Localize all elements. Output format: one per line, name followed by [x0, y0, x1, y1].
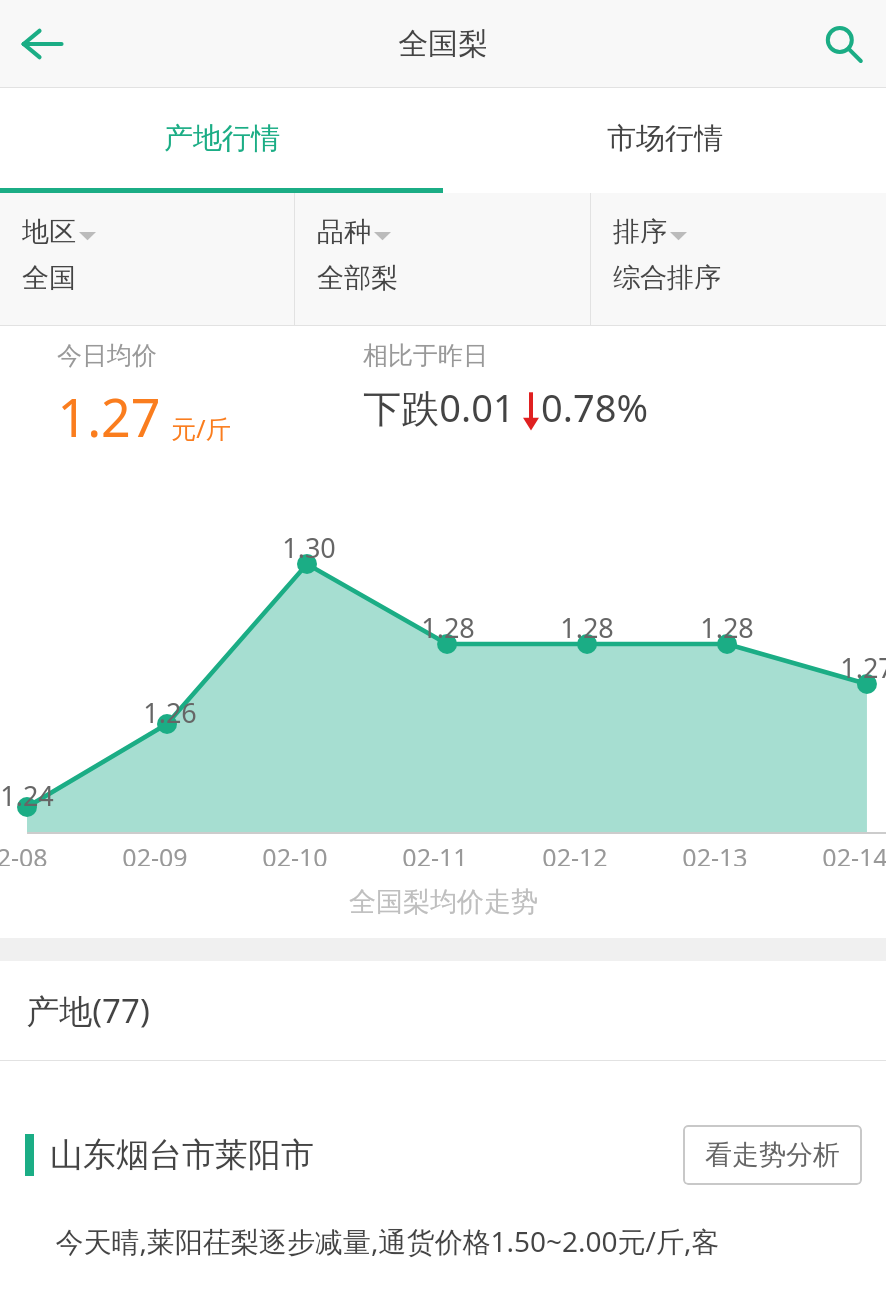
button[interactable]: 市场行情	[443, 88, 886, 188]
staticText: 1.27	[840, 649, 886, 686]
staticText: 02-14	[822, 840, 886, 874]
staticText: 地区	[22, 215, 76, 249]
staticText: 今日均价	[57, 340, 157, 371]
staticText: 1.28	[421, 609, 475, 646]
button[interactable]: 看走势分析	[683, 1125, 862, 1185]
staticText: 02-08	[0, 840, 48, 874]
button[interactable]: 品种	[295, 193, 590, 326]
staticText: 品种	[317, 215, 371, 249]
staticText: 市场行情	[607, 120, 723, 157]
button[interactable]: 地区	[0, 193, 294, 326]
staticText: 全部梨	[317, 261, 398, 295]
button[interactable]: 产地行情	[0, 88, 443, 188]
staticText: 今天晴,莱阳茌梨逐步减量,通货价格1.50~2.00元/斤,客	[55, 1222, 720, 1260]
staticText: 1.30	[282, 529, 336, 566]
button[interactable]: Search	[800, 1, 886, 87]
button[interactable]: 山东烟台市莱阳市	[0, 1061, 886, 1260]
staticText: 02-13	[682, 840, 748, 874]
staticText: 相比于昨日	[363, 340, 488, 371]
staticText: 下跌0.01	[363, 381, 515, 433]
staticText: 1.27	[57, 381, 161, 452]
staticText: 1.26	[143, 694, 197, 731]
staticText: 02-10	[262, 840, 328, 874]
staticText: 排序	[613, 215, 667, 249]
staticText: 综合排序	[613, 261, 721, 295]
button[interactable]: 产地(77)	[0, 961, 886, 1060]
staticText: 产地行情	[164, 120, 280, 157]
staticText: 产地(77)	[26, 988, 150, 1033]
staticText: 1.28	[560, 609, 614, 646]
staticText: 全国梨均价走势	[349, 885, 538, 919]
staticText: 山东烟台市莱阳市	[50, 1134, 314, 1176]
staticText: 看走势分析	[705, 1138, 840, 1172]
button[interactable]: Back	[0, 1, 86, 87]
button[interactable]: 排序	[591, 193, 886, 326]
staticText: 0.78%	[541, 381, 648, 433]
staticText: 1.28	[700, 609, 754, 646]
staticText: 全国	[22, 261, 76, 295]
staticText: 1.24	[0, 777, 54, 814]
staticText: 02-09	[122, 840, 188, 874]
staticText: 全国梨	[398, 25, 488, 63]
staticText: 02-11	[402, 840, 468, 874]
staticText: 元/斤	[171, 411, 231, 445]
staticText: 02-12	[542, 840, 608, 874]
